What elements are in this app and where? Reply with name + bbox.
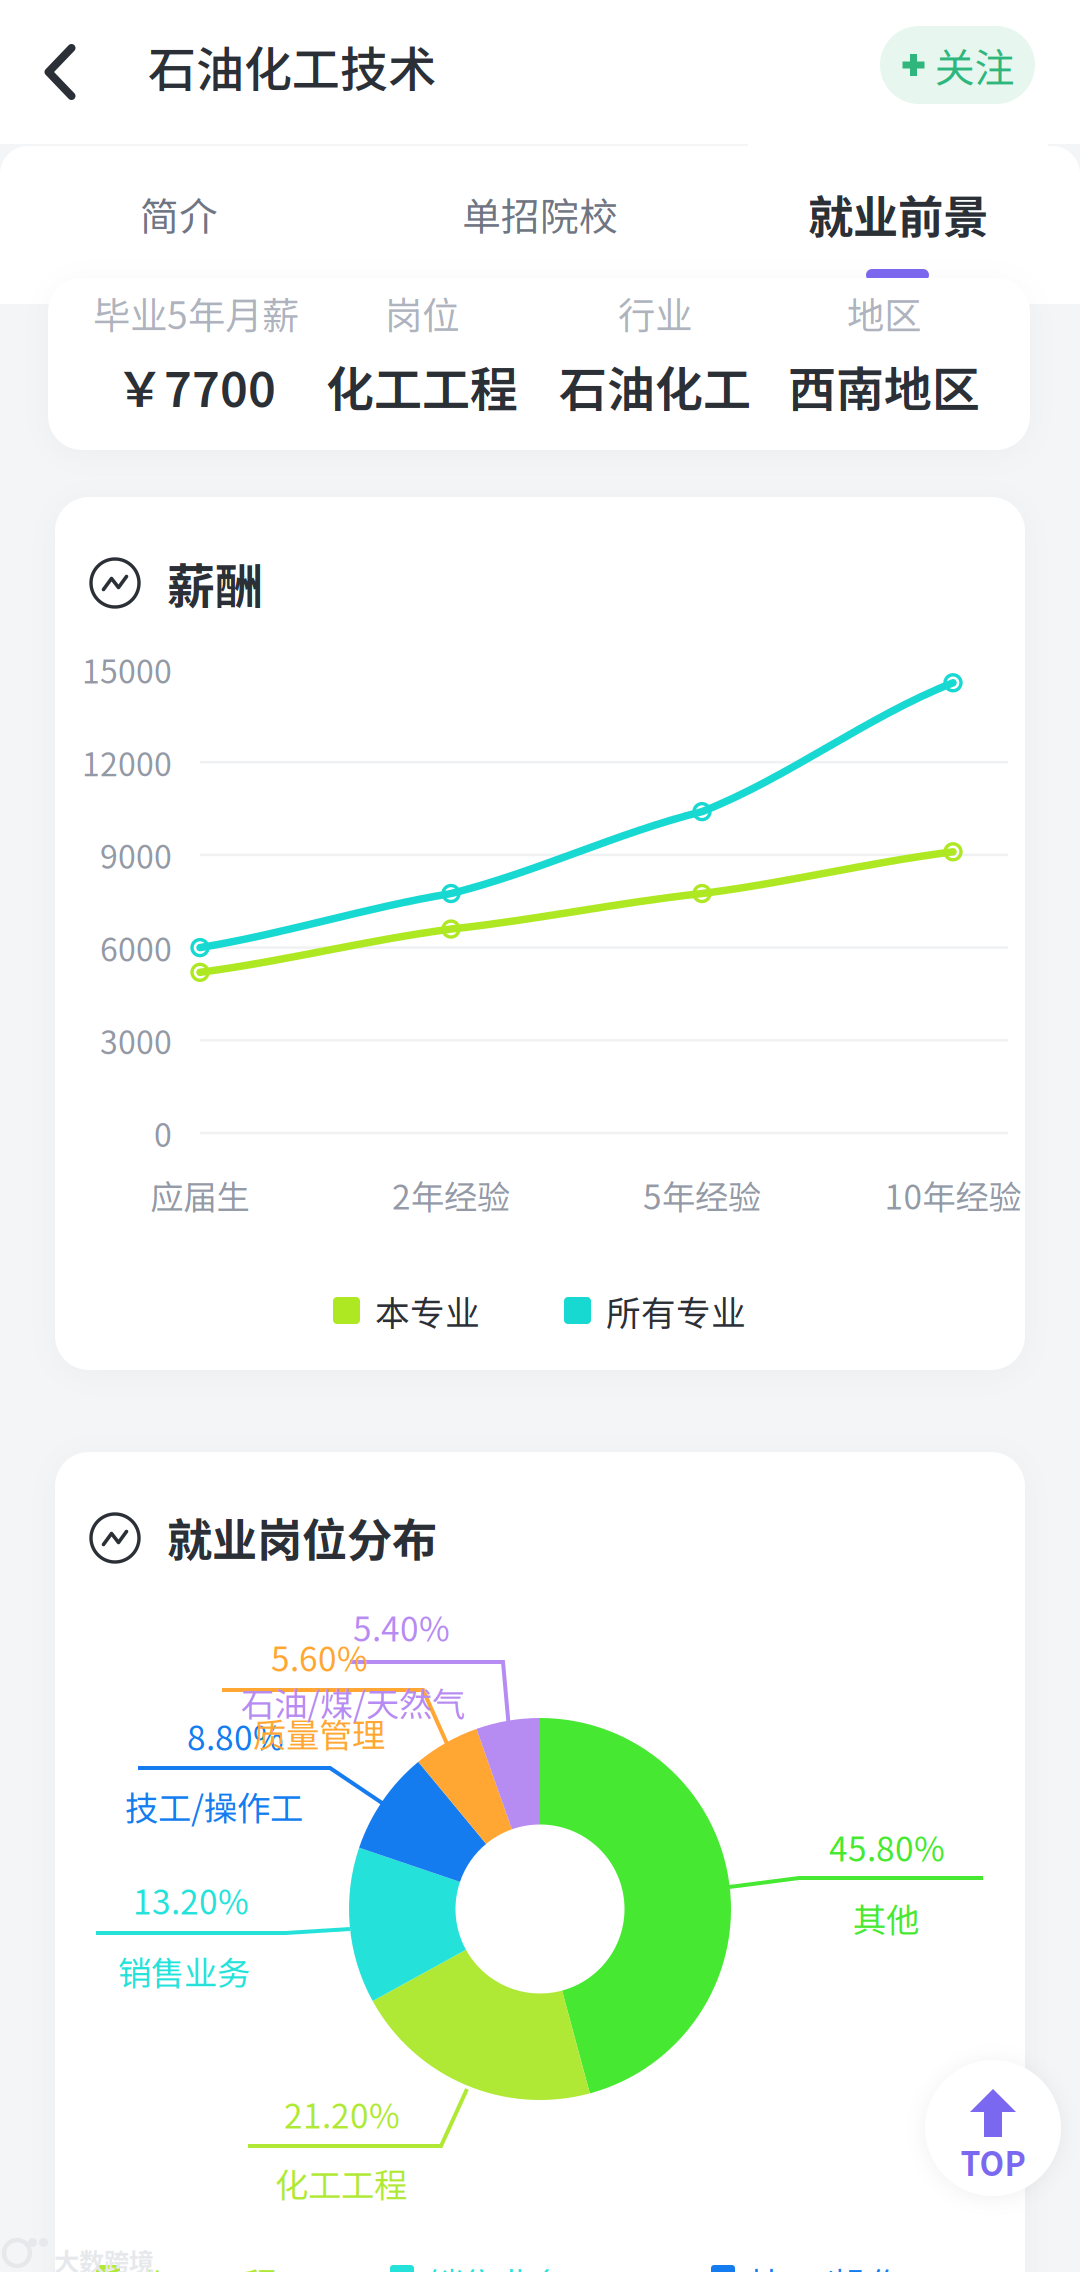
staticText: 质量管理 bbox=[253, 1709, 385, 1757]
staticText: 化工工程 21.2% bbox=[138, 2258, 385, 2272]
button[interactable]: 返回 bbox=[0, 0, 120, 144]
staticText: ￥7700 bbox=[116, 351, 276, 421]
staticText: 行业 bbox=[618, 286, 692, 340]
staticText: 应届生 bbox=[150, 1171, 249, 1219]
button[interactable]: 回到顶部 bbox=[925, 2060, 1061, 2196]
staticText: 8.80% bbox=[187, 1712, 284, 1760]
staticText: 岗位 bbox=[385, 286, 459, 340]
staticText: 就业岗位分布 bbox=[167, 1504, 437, 1570]
button[interactable]: 单招院校 bbox=[390, 142, 690, 286]
staticText: 2年经验 bbox=[392, 1171, 510, 1219]
staticText: TOP bbox=[960, 2139, 1025, 2185]
button[interactable]: 关注 bbox=[880, 26, 1035, 104]
staticText: 销售业务 13.2% bbox=[428, 2258, 675, 2272]
staticText: 21.20% bbox=[284, 2090, 400, 2138]
staticText: 9000 bbox=[100, 832, 172, 878]
staticText: 5.40% bbox=[353, 1603, 450, 1651]
staticText: 地区 bbox=[847, 286, 921, 340]
staticText: 化工工程 bbox=[275, 2159, 407, 2207]
staticText: 12000 bbox=[82, 739, 172, 785]
staticText: 销售业务 bbox=[118, 1947, 250, 1995]
button[interactable]: 简介 bbox=[29, 142, 329, 286]
staticText: 13.20% bbox=[133, 1876, 249, 1924]
staticText: 简介 bbox=[140, 186, 218, 242]
staticText: 薪酬 bbox=[167, 548, 263, 618]
staticText: 毕业5年月薪 bbox=[93, 286, 299, 340]
staticText: 0 bbox=[154, 1110, 172, 1156]
staticText: 3000 bbox=[100, 1017, 172, 1063]
staticText: 其他 bbox=[853, 1894, 919, 1942]
staticText: 石油化工技术 bbox=[148, 31, 436, 101]
staticText: 15000 bbox=[82, 646, 172, 693]
staticText: 化工工程 bbox=[326, 351, 518, 421]
staticText: 石油/煤/天然气 bbox=[241, 1678, 465, 1726]
staticText: 就业前景 bbox=[808, 181, 988, 247]
staticText: 西南地区 bbox=[788, 351, 980, 421]
staticText: 关注 bbox=[934, 36, 1014, 94]
staticText: 本专业 bbox=[375, 1286, 480, 1336]
staticText: 大数跨境 bbox=[54, 2242, 154, 2272]
staticText: 单招院校 bbox=[462, 186, 618, 242]
staticText: 5年经验 bbox=[643, 1171, 761, 1219]
staticText: 技工/操作工 8.8% bbox=[749, 2258, 1026, 2272]
staticText: 6000 bbox=[100, 924, 172, 971]
button[interactable]: 就业前景 bbox=[748, 142, 1048, 286]
staticText: 10年经验 bbox=[884, 1171, 1021, 1219]
staticText: 5.60% bbox=[271, 1633, 368, 1681]
staticText: 技工/操作工 bbox=[125, 1782, 303, 1830]
staticText: 所有专业 bbox=[606, 1286, 746, 1336]
staticText: 石油化工 bbox=[559, 351, 751, 421]
staticText: 45.80% bbox=[829, 1823, 945, 1871]
